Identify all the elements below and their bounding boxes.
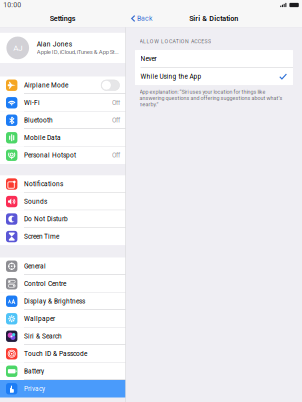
button[interactable]: Privacy — [0, 380, 125, 397]
staticText: General — [24, 262, 46, 270]
button[interactable]: While Using the App — [135, 68, 293, 85]
button[interactable]: Touch ID & Passcode — [0, 345, 125, 362]
staticText: Screen Time — [24, 233, 59, 240]
staticText: Off — [112, 99, 120, 107]
staticText: AJ — [13, 43, 22, 53]
button[interactable]: Wi-Fi — [0, 94, 125, 111]
staticText: 10:00 — [3, 1, 21, 9]
staticText: Airplane Mode — [24, 81, 68, 89]
staticText: Personal Hotspot — [24, 151, 76, 159]
staticText: Notifications — [24, 180, 63, 188]
button[interactable]: Control Centre — [0, 275, 125, 292]
button[interactable]: Screen Time — [0, 228, 125, 245]
staticText: Do Not Disturb — [24, 215, 68, 223]
button[interactable]: Mobile Data — [0, 129, 125, 146]
staticText: Apple ID, iCloud, iTunes & App St… — [37, 49, 119, 56]
staticText: Never — [140, 55, 156, 63]
button[interactable]: Notifications — [0, 175, 125, 193]
staticText: Settings — [50, 14, 76, 23]
staticText: Siri & Dictation — [189, 14, 238, 23]
button[interactable]: Airplane Mode — [0, 76, 125, 94]
staticText: Sounds — [24, 198, 47, 205]
staticText: App explanation: “Siri uses your locatio… — [140, 89, 283, 107]
staticText: Siri & Search — [24, 332, 62, 340]
button[interactable]: Personal Hotspot — [0, 146, 125, 164]
button[interactable]: Wallpaper — [0, 310, 125, 327]
staticText: Display & Brightness — [24, 297, 85, 305]
staticText: ALLOW LOCATION ACCESS — [140, 38, 211, 45]
staticText: While Using the App — [140, 73, 201, 80]
staticText: Alan Jones — [37, 40, 72, 48]
button[interactable]: Never — [135, 50, 293, 67]
staticText: Wi-Fi — [24, 99, 40, 107]
staticText: Mobile Data — [24, 134, 61, 142]
staticText: Off — [112, 151, 120, 159]
staticText: Touch ID & Passcode — [24, 350, 87, 358]
staticText: Bluetooth — [24, 116, 53, 124]
button[interactable]: Do Not Disturb — [0, 210, 125, 228]
staticText: Wallpaper — [24, 315, 55, 323]
staticText: Battery — [24, 367, 44, 375]
staticText: Off — [112, 116, 120, 124]
staticText: Privacy — [24, 385, 45, 393]
button[interactable]: Display & Brightness — [0, 292, 125, 310]
button[interactable]: Back — [125, 10, 153, 27]
button[interactable]: Battery — [0, 362, 125, 380]
button[interactable]: AJ — [0, 33, 125, 63]
button[interactable]: Bluetooth — [0, 111, 125, 129]
button[interactable]: Sounds — [0, 193, 125, 210]
staticText: Control Centre — [24, 280, 66, 288]
button[interactable]: Siri & Search — [0, 327, 125, 345]
staticText: Back — [137, 14, 153, 22]
button[interactable]: General — [0, 257, 125, 275]
